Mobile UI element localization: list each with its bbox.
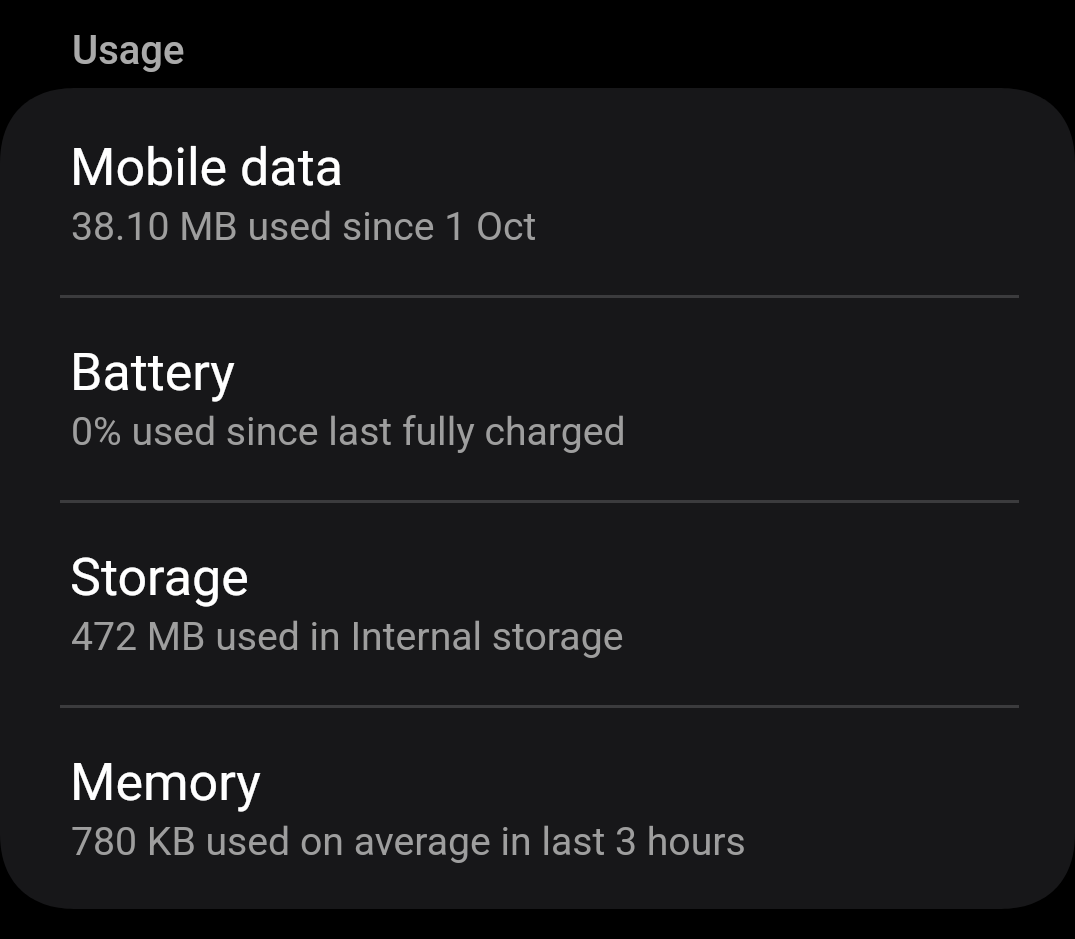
staticText: Storage: [70, 547, 249, 608]
staticText: 0% used since last fully charged: [71, 409, 626, 455]
staticText: 472 MB used in Internal storage: [71, 614, 624, 660]
staticText: 780 KB used on average in last 3 hours: [71, 819, 746, 865]
staticText: 38.10 MB used since 1 Oct: [71, 204, 537, 250]
staticText: Battery: [70, 342, 235, 403]
button[interactable]: Battery: [0, 293, 1075, 498]
button[interactable]: Mobile data: [0, 88, 1075, 293]
button[interactable]: Storage: [0, 498, 1075, 703]
staticText: Mobile data: [70, 137, 343, 198]
staticText: Memory: [70, 752, 261, 813]
button[interactable]: Memory: [0, 703, 1075, 908]
staticText: Usage: [72, 27, 185, 74]
